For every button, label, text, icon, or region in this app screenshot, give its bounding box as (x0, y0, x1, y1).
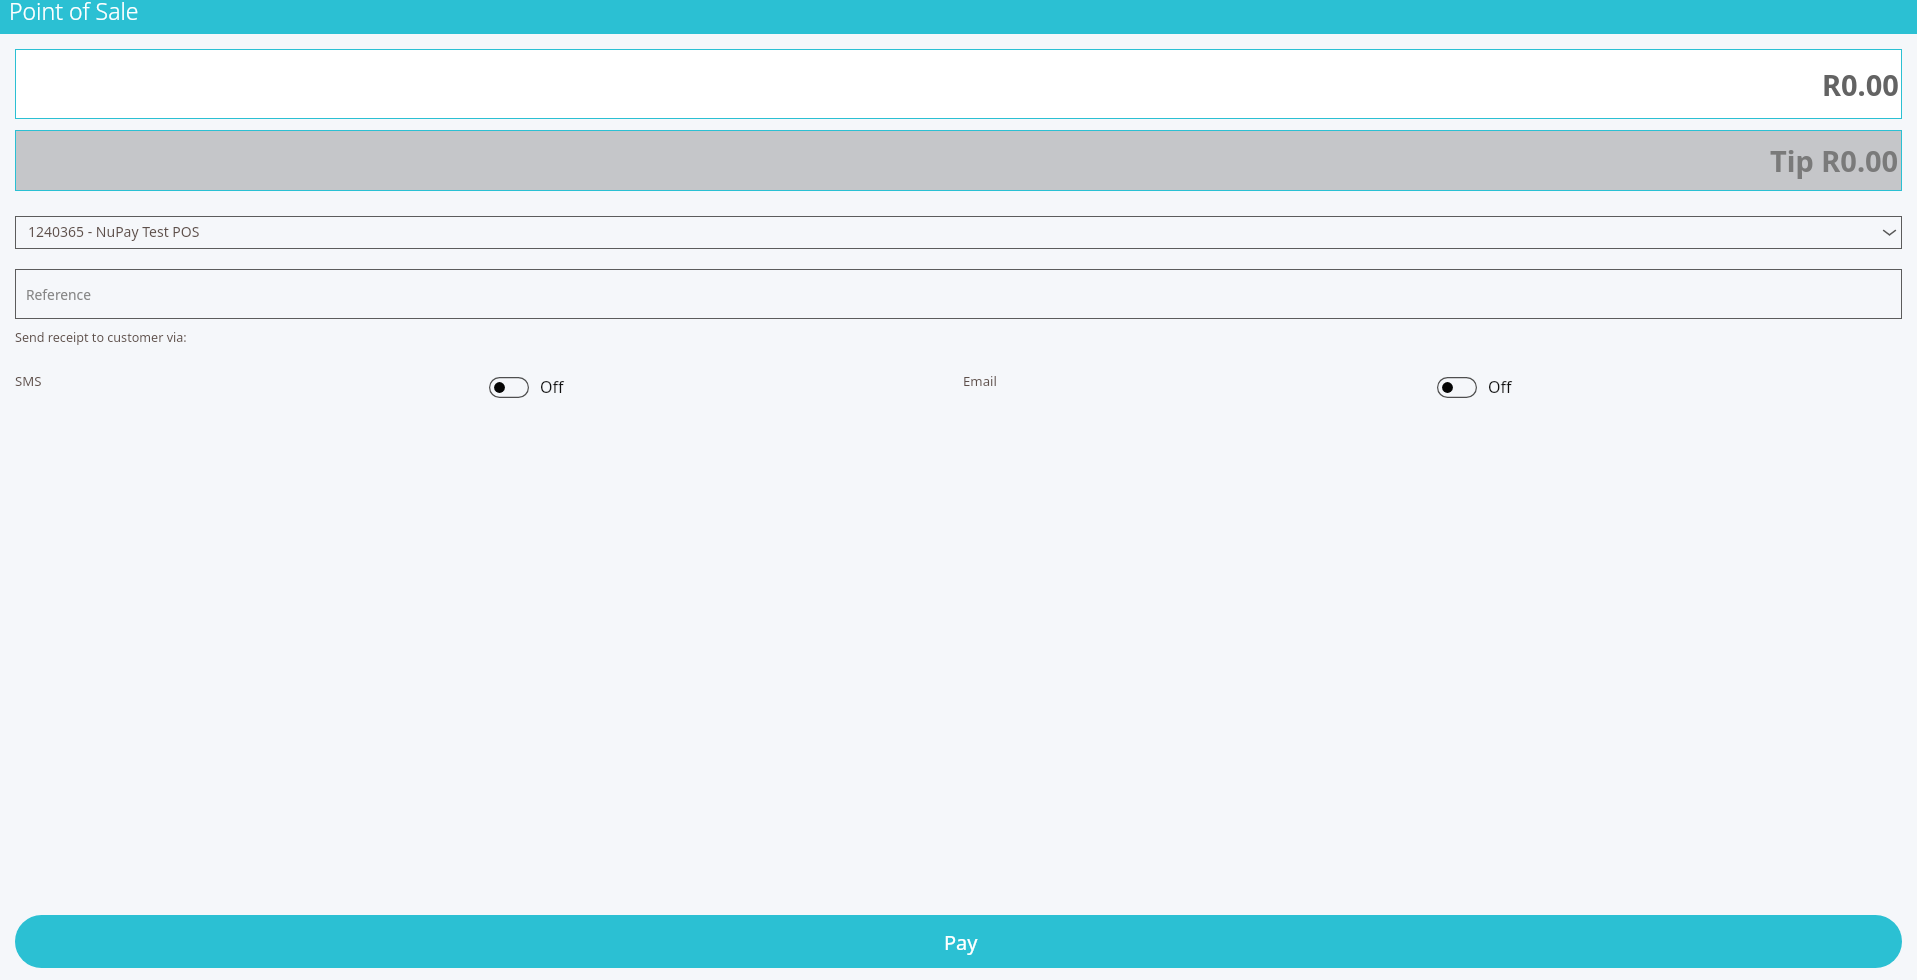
button[interactable]: R0.00 (15, 49, 1902, 119)
staticText: SMS (15, 372, 42, 390)
button[interactable]: Email receipt switch, off (1437, 377, 1477, 398)
staticText: Reference (26, 285, 92, 304)
button[interactable]: Tip R0.00 (15, 130, 1902, 191)
button[interactable]: SMS receipt switch, off (489, 377, 529, 398)
staticText: Send receipt to customer via: (15, 329, 187, 346)
staticText: Point of Sale (9, 0, 139, 26)
button[interactable]: Pay (15, 915, 1902, 968)
staticText: Off (1488, 376, 1512, 398)
staticText: Email (963, 372, 997, 390)
staticText: 1240365 - NuPay Test POS (28, 222, 200, 241)
staticText: Pay (944, 929, 978, 956)
other: Expand merchant list (1882, 225, 1897, 240)
button[interactable]: Reference (15, 269, 1902, 319)
button[interactable]: 1240365 - NuPay Test POS (15, 216, 1902, 249)
staticText: Tip R0.00 (1770, 141, 1899, 180)
staticText: Off (540, 376, 564, 398)
staticText: R0.00 (1822, 65, 1899, 104)
